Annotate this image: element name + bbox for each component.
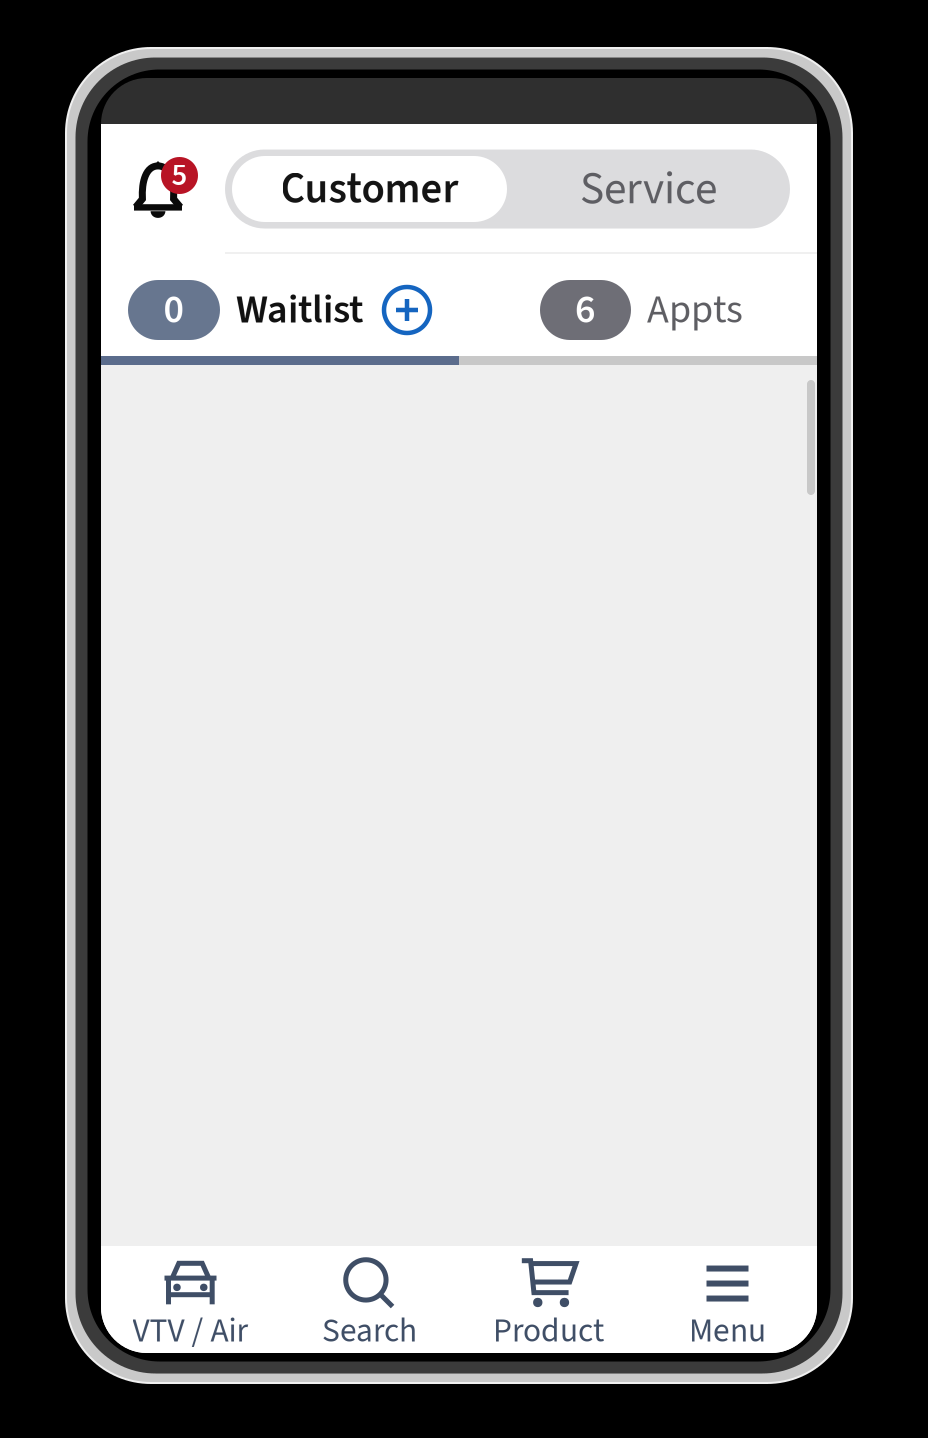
button[interactable]: Service (507, 156, 790, 222)
staticText: Menu (689, 1307, 766, 1355)
staticText: Customer (280, 159, 458, 219)
staticText: 6 (575, 281, 596, 338)
staticText: 0 (163, 281, 184, 338)
staticText: VTV / Air (132, 1307, 248, 1355)
button[interactable]: Search (280, 1246, 459, 1353)
staticText: 5 (171, 154, 187, 197)
button[interactable]: Menu (638, 1246, 817, 1353)
staticText: Search (322, 1307, 417, 1355)
button[interactable]: VTV / Air (101, 1246, 280, 1353)
staticText: Appts (647, 281, 743, 338)
button[interactable]: 0 (101, 254, 459, 356)
staticText: Service (580, 157, 717, 221)
staticText: Waitlist (236, 281, 363, 338)
button[interactable]: 6 (459, 254, 817, 356)
button[interactable]: Product (459, 1246, 638, 1353)
button[interactable]: Customer (225, 156, 507, 222)
staticText: Product (493, 1307, 604, 1355)
button[interactable]: Notifications, 5 unread (101, 124, 225, 254)
